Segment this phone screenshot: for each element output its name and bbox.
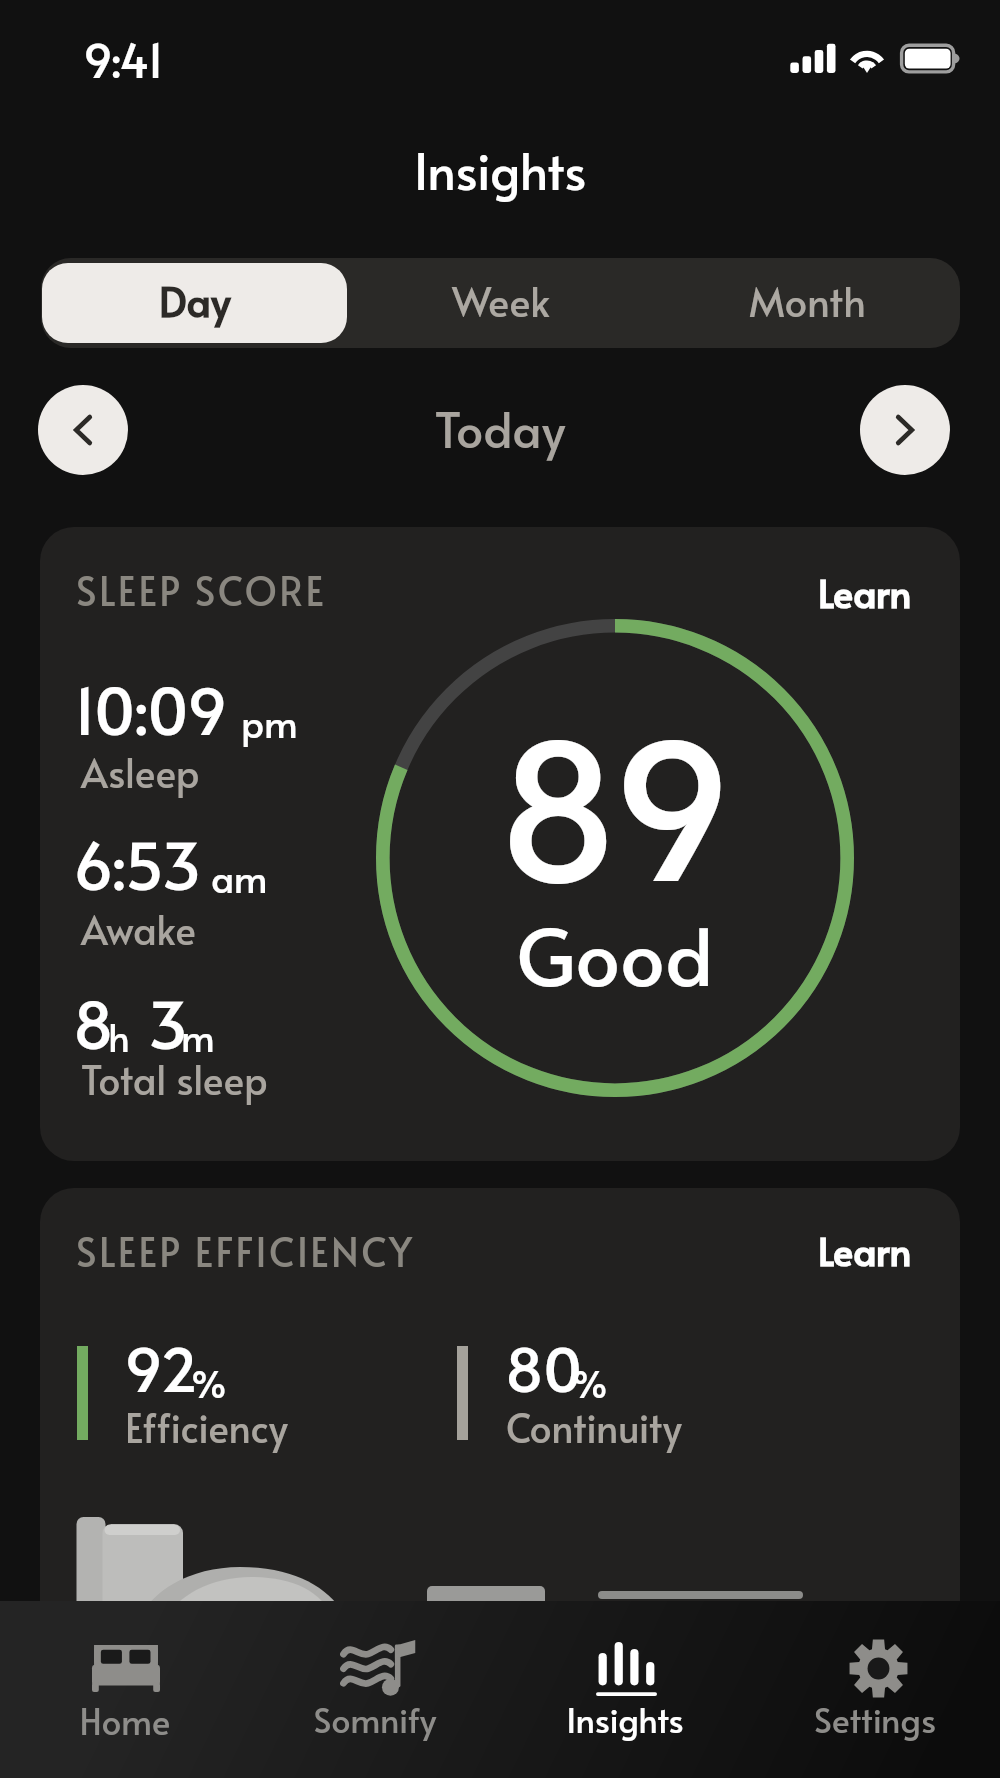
button[interactable]: Settings [750,1601,1000,1778]
button[interactable]: Somnify [250,1601,500,1778]
staticText: Total sleep [81,1052,268,1106]
staticText: Good [376,899,854,1008]
staticText: SLEEP EFFICIENCY [76,1224,415,1278]
staticText: Continuity [506,1400,682,1454]
staticText: Awake [81,902,197,956]
staticText: Month [749,273,866,328]
button[interactable]: Learn [40,1188,134,1240]
staticText: 89 [376,673,854,934]
staticText: % [191,1356,227,1408]
staticText: m [181,1010,215,1062]
staticText: Somnify [250,1696,500,1743]
button[interactable]: Insights [500,1601,750,1778]
staticText: Efficiency [125,1400,288,1454]
staticText: Insights [0,135,1000,204]
button[interactable]: Week [349,263,653,343]
staticText: Asleep [81,745,200,799]
button[interactable]: Month [655,263,959,343]
staticText: 92 [124,1326,199,1409]
staticText: Settings [750,1696,1000,1743]
button[interactable]: Previous day [38,385,128,475]
button[interactable]: Next day [860,385,950,475]
staticText: Week [452,273,551,328]
staticText: pm [241,696,298,748]
staticText: 3 [148,980,189,1067]
button[interactable]: Learn [40,527,134,579]
staticText: Today [0,395,1000,461]
staticText: SLEEP SCORE [76,563,327,617]
staticText: % [572,1356,608,1408]
staticText: 9:41 [83,27,164,90]
staticText: Home [0,1696,250,1744]
button[interactable]: Home [0,1601,250,1778]
staticText: 10:09 [73,666,228,753]
staticText: Insights [500,1696,750,1743]
staticText: h [108,1010,130,1062]
staticText: am [211,851,268,903]
button[interactable]: Day [42,263,347,343]
staticText: 80 [505,1326,583,1409]
staticText: 8 [73,980,114,1067]
staticText: Day [159,273,231,328]
staticText: 6:53 [73,821,202,908]
